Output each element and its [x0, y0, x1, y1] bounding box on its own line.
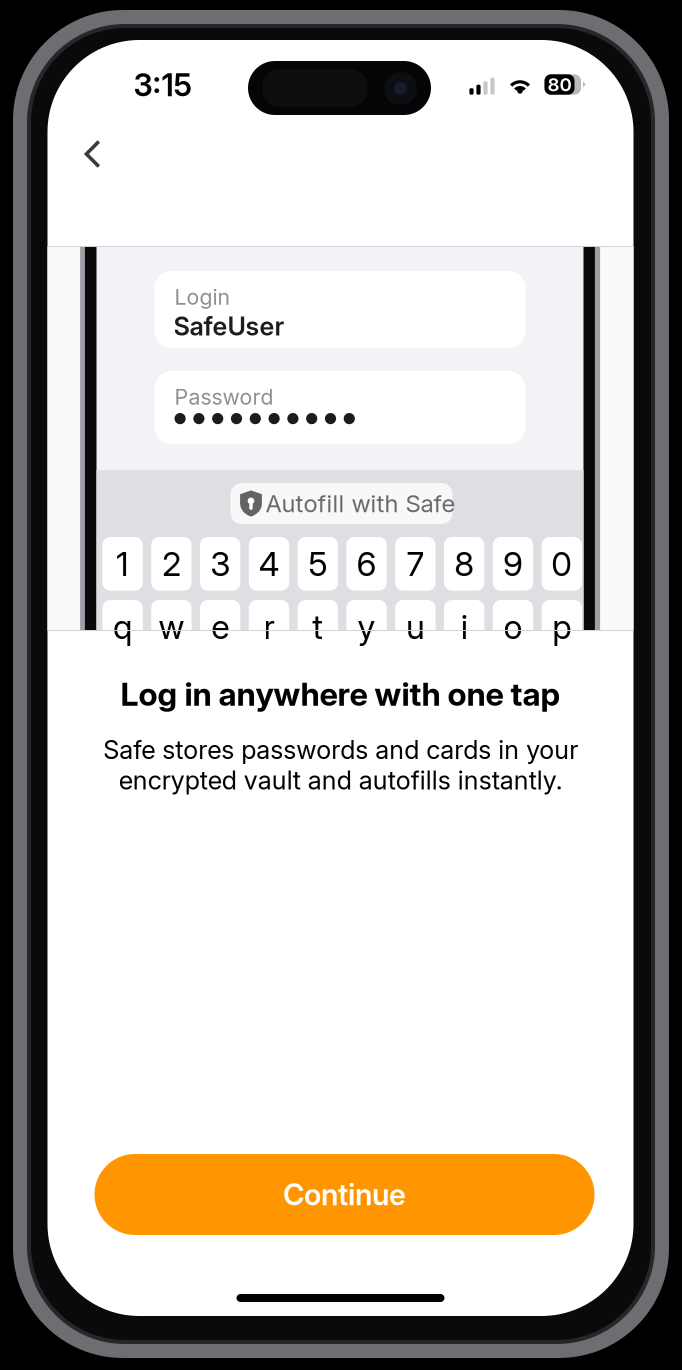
staticText: 80 [547, 73, 571, 96]
staticText: 2 [162, 544, 181, 584]
staticText: e [211, 607, 229, 647]
staticText: i [461, 607, 468, 647]
staticText: o [503, 607, 522, 647]
staticText: 1 [116, 544, 129, 584]
staticText: 0 [551, 544, 572, 584]
staticText: y [358, 607, 376, 647]
staticText: Login [174, 284, 230, 310]
staticText: q [113, 607, 132, 647]
staticText: SafeUser [173, 311, 284, 342]
staticText: Autofill with Safe [265, 489, 455, 518]
staticText: t [312, 607, 323, 647]
staticText: Safe stores passwords and cards in your … [103, 734, 578, 796]
button[interactable]: Back [63, 125, 121, 183]
staticText: 3 [210, 544, 230, 584]
staticText: 6 [357, 544, 377, 584]
staticText: 7 [406, 544, 424, 584]
staticText: Password [174, 384, 273, 410]
staticText: 5 [308, 544, 327, 584]
staticText: w [158, 607, 184, 647]
staticText: 8 [454, 544, 474, 584]
button[interactable]: Continue [94, 1154, 594, 1235]
staticText: 9 [503, 544, 523, 584]
staticText: Continue [283, 1177, 406, 1212]
staticText: u [406, 607, 425, 647]
staticText: Log in anywhere with one tap [120, 675, 560, 713]
staticText: p [552, 607, 571, 647]
staticText: r [263, 607, 274, 647]
staticText: 3:15 [133, 66, 191, 103]
staticText: 4 [258, 544, 279, 584]
